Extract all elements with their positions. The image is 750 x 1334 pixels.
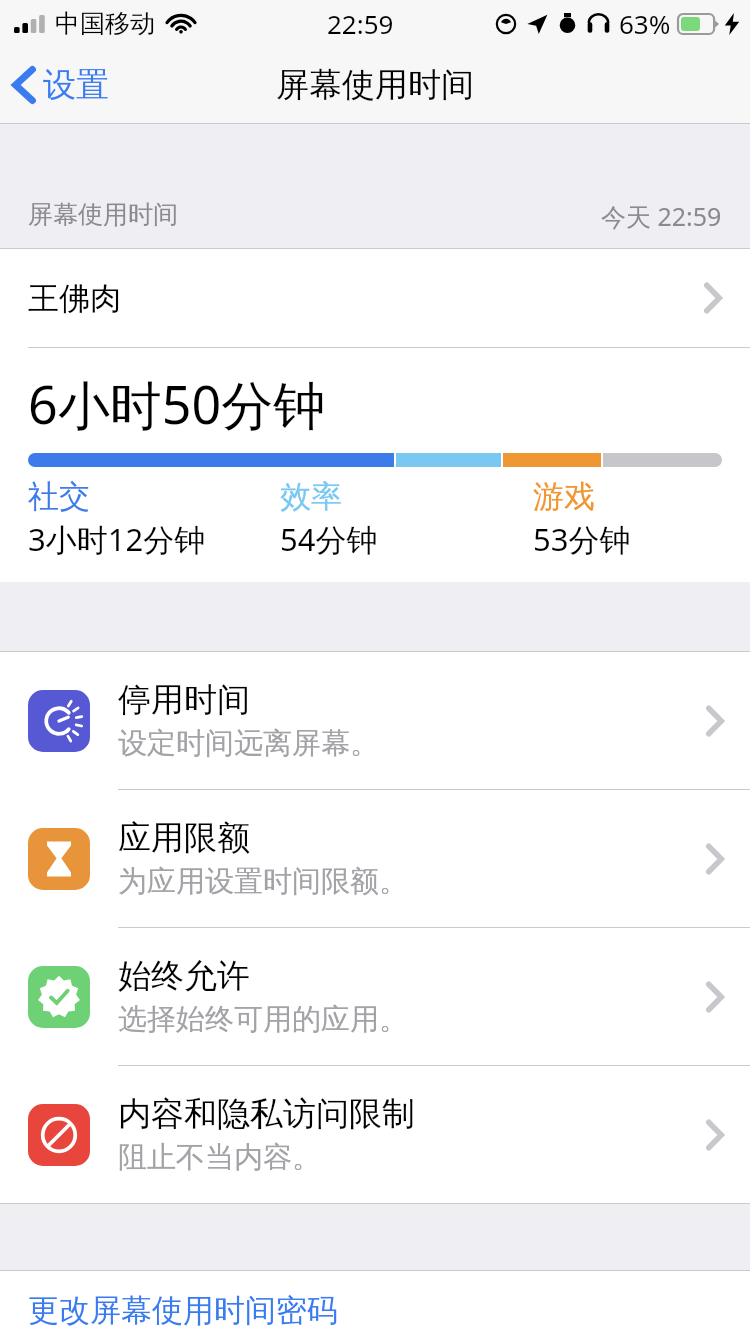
other: 始终允许	[28, 966, 90, 1028]
button[interactable]: 停用时间	[0, 652, 750, 789]
staticText: 效率	[280, 477, 342, 516]
staticText: 63%	[619, 6, 671, 41]
staticText: 始终允许	[118, 955, 250, 997]
button[interactable]: 应用限额	[0, 790, 750, 927]
staticText: 6小时50分钟	[28, 368, 326, 439]
staticText: 停用时间	[118, 679, 250, 721]
other: 应用限额	[28, 828, 90, 890]
staticText: 王佛肉	[28, 279, 704, 318]
button[interactable]: 王佛肉	[0, 249, 750, 347]
staticText: 社交	[28, 477, 90, 516]
button[interactable]: 始终允许	[0, 928, 750, 1065]
staticText: 屏幕使用时间	[28, 199, 178, 230]
staticText: 3小时12分钟	[28, 518, 206, 560]
staticText: 为应用设置时间限额。	[118, 863, 408, 900]
staticText: 游戏	[533, 477, 595, 516]
other: 内容和隐私访问限制	[28, 1104, 90, 1166]
button[interactable]: 设置	[0, 58, 123, 112]
staticText: 选择始终可用的应用。	[118, 1001, 408, 1038]
staticText: 今天 22:59	[601, 199, 722, 233]
staticText: 阻止不当内容。	[118, 1139, 321, 1176]
staticText: 内容和隐私访问限制	[118, 1093, 415, 1135]
staticText: 屏幕使用时间	[276, 64, 474, 106]
staticText: 54分钟	[280, 518, 378, 560]
other: 停用时间	[28, 690, 90, 752]
staticText: 应用限额	[118, 817, 250, 859]
staticText: 设定时间远离屏幕。	[118, 725, 379, 762]
button[interactable]: 更改屏幕使用时间密码	[0, 1271, 750, 1334]
staticText: 中国移动	[55, 8, 155, 39]
button[interactable]: 6小时50分钟	[0, 348, 750, 582]
staticText: 53分钟	[533, 518, 631, 560]
staticText: 更改屏幕使用时间密码	[28, 1291, 338, 1330]
staticText: 设置	[43, 64, 109, 106]
button[interactable]: 内容和隐私访问限制	[0, 1066, 750, 1203]
staticText: 22:59	[327, 6, 394, 41]
